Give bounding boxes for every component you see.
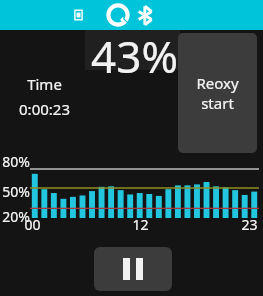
staticText: 20% (2, 207, 30, 226)
button[interactable]: Pause (94, 247, 172, 291)
staticText: Reoxy (196, 73, 239, 93)
staticText: 43% (91, 26, 178, 74)
button[interactable]: Reoxy (178, 33, 257, 153)
staticText: 00 (24, 215, 41, 234)
staticText: 23 (241, 215, 258, 234)
staticText: 12 (132, 215, 149, 234)
staticText: start (201, 93, 234, 113)
staticText: 0:00:23 (19, 99, 70, 119)
staticText: 50% (2, 182, 30, 201)
staticText: 80% (2, 152, 30, 171)
staticText: Time (27, 74, 62, 94)
